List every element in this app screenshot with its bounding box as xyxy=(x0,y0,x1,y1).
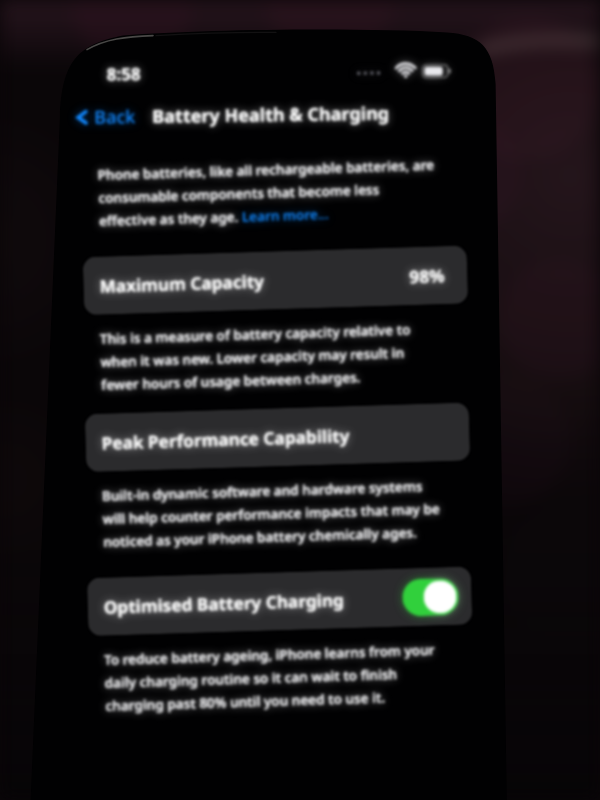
staticText: To reduce battery ageing, iPhone learns … xyxy=(104,641,437,715)
staticText: Built-in dynamic software and hardware s… xyxy=(101,477,441,551)
staticText: Maximum Capacity xyxy=(99,270,265,298)
staticText: Maximum Capacity xyxy=(99,270,265,298)
button[interactable]: Back xyxy=(70,99,397,132)
button[interactable]: Back xyxy=(70,99,397,132)
staticText: 98% xyxy=(409,264,446,288)
staticText: Optimised Battery Charging xyxy=(103,588,345,619)
other: Back xyxy=(74,107,89,128)
staticText: Optimised Battery Charging xyxy=(103,588,345,619)
button[interactable]: Maximum Capacity xyxy=(82,245,468,315)
staticText: 98% xyxy=(409,264,446,288)
staticText: Battery Health & Charging xyxy=(152,101,389,129)
staticText: To reduce battery ageing, iPhone learns … xyxy=(104,641,437,715)
staticText: Built-in dynamic software and hardware s… xyxy=(101,477,441,551)
staticText: Back xyxy=(94,104,135,130)
button[interactable]: Optimised Battery Charging xyxy=(87,566,472,636)
staticText: Maximum Capacity xyxy=(99,270,265,298)
staticText: 8:58 xyxy=(107,62,141,85)
staticText: 8:58 xyxy=(107,62,141,85)
staticText: Phone batteries, like all rechargeable b… xyxy=(97,156,436,230)
button[interactable]: Peak Performance Capability xyxy=(85,402,470,472)
button[interactable]: Maximum Capacity xyxy=(82,245,468,315)
staticText: This is a measure of battery capacity re… xyxy=(99,320,412,394)
button[interactable]: Back xyxy=(70,99,397,132)
other: Back xyxy=(74,107,89,128)
staticText: Peak Performance Capability xyxy=(101,424,350,455)
staticText: Peak Performance Capability xyxy=(101,424,350,455)
button[interactable]: Optimised Battery Charging xyxy=(87,566,472,636)
staticText: This is a measure of battery capacity re… xyxy=(99,320,412,394)
staticText: To reduce battery ageing, iPhone learns … xyxy=(104,641,437,715)
staticText: Peak Performance Capability xyxy=(101,424,350,455)
button[interactable]: Optimised Battery Charging xyxy=(402,578,459,616)
staticText: Battery Health & Charging xyxy=(152,101,389,129)
button[interactable]: Peak Performance Capability xyxy=(85,402,470,472)
staticText: This is a measure of battery capacity re… xyxy=(99,320,412,394)
button[interactable]: Optimised Battery Charging xyxy=(402,578,459,616)
button[interactable]: Optimised Battery Charging xyxy=(402,578,459,616)
other: Back xyxy=(74,107,89,128)
staticText: 8:58 xyxy=(107,62,141,85)
staticText: Back xyxy=(94,104,135,130)
staticText: Back xyxy=(94,104,135,130)
button[interactable]: Peak Performance Capability xyxy=(85,402,470,472)
staticText: Phone batteries, like all rechargeable b… xyxy=(97,156,436,230)
staticText: Battery Health & Charging xyxy=(152,101,389,129)
button[interactable]: Maximum Capacity xyxy=(82,245,468,315)
button[interactable]: Optimised Battery Charging xyxy=(87,566,472,636)
staticText: Phone batteries, like all rechargeable b… xyxy=(97,156,436,230)
staticText: 98% xyxy=(409,264,446,288)
staticText: Built-in dynamic software and hardware s… xyxy=(101,477,441,551)
staticText: Optimised Battery Charging xyxy=(103,588,345,619)
